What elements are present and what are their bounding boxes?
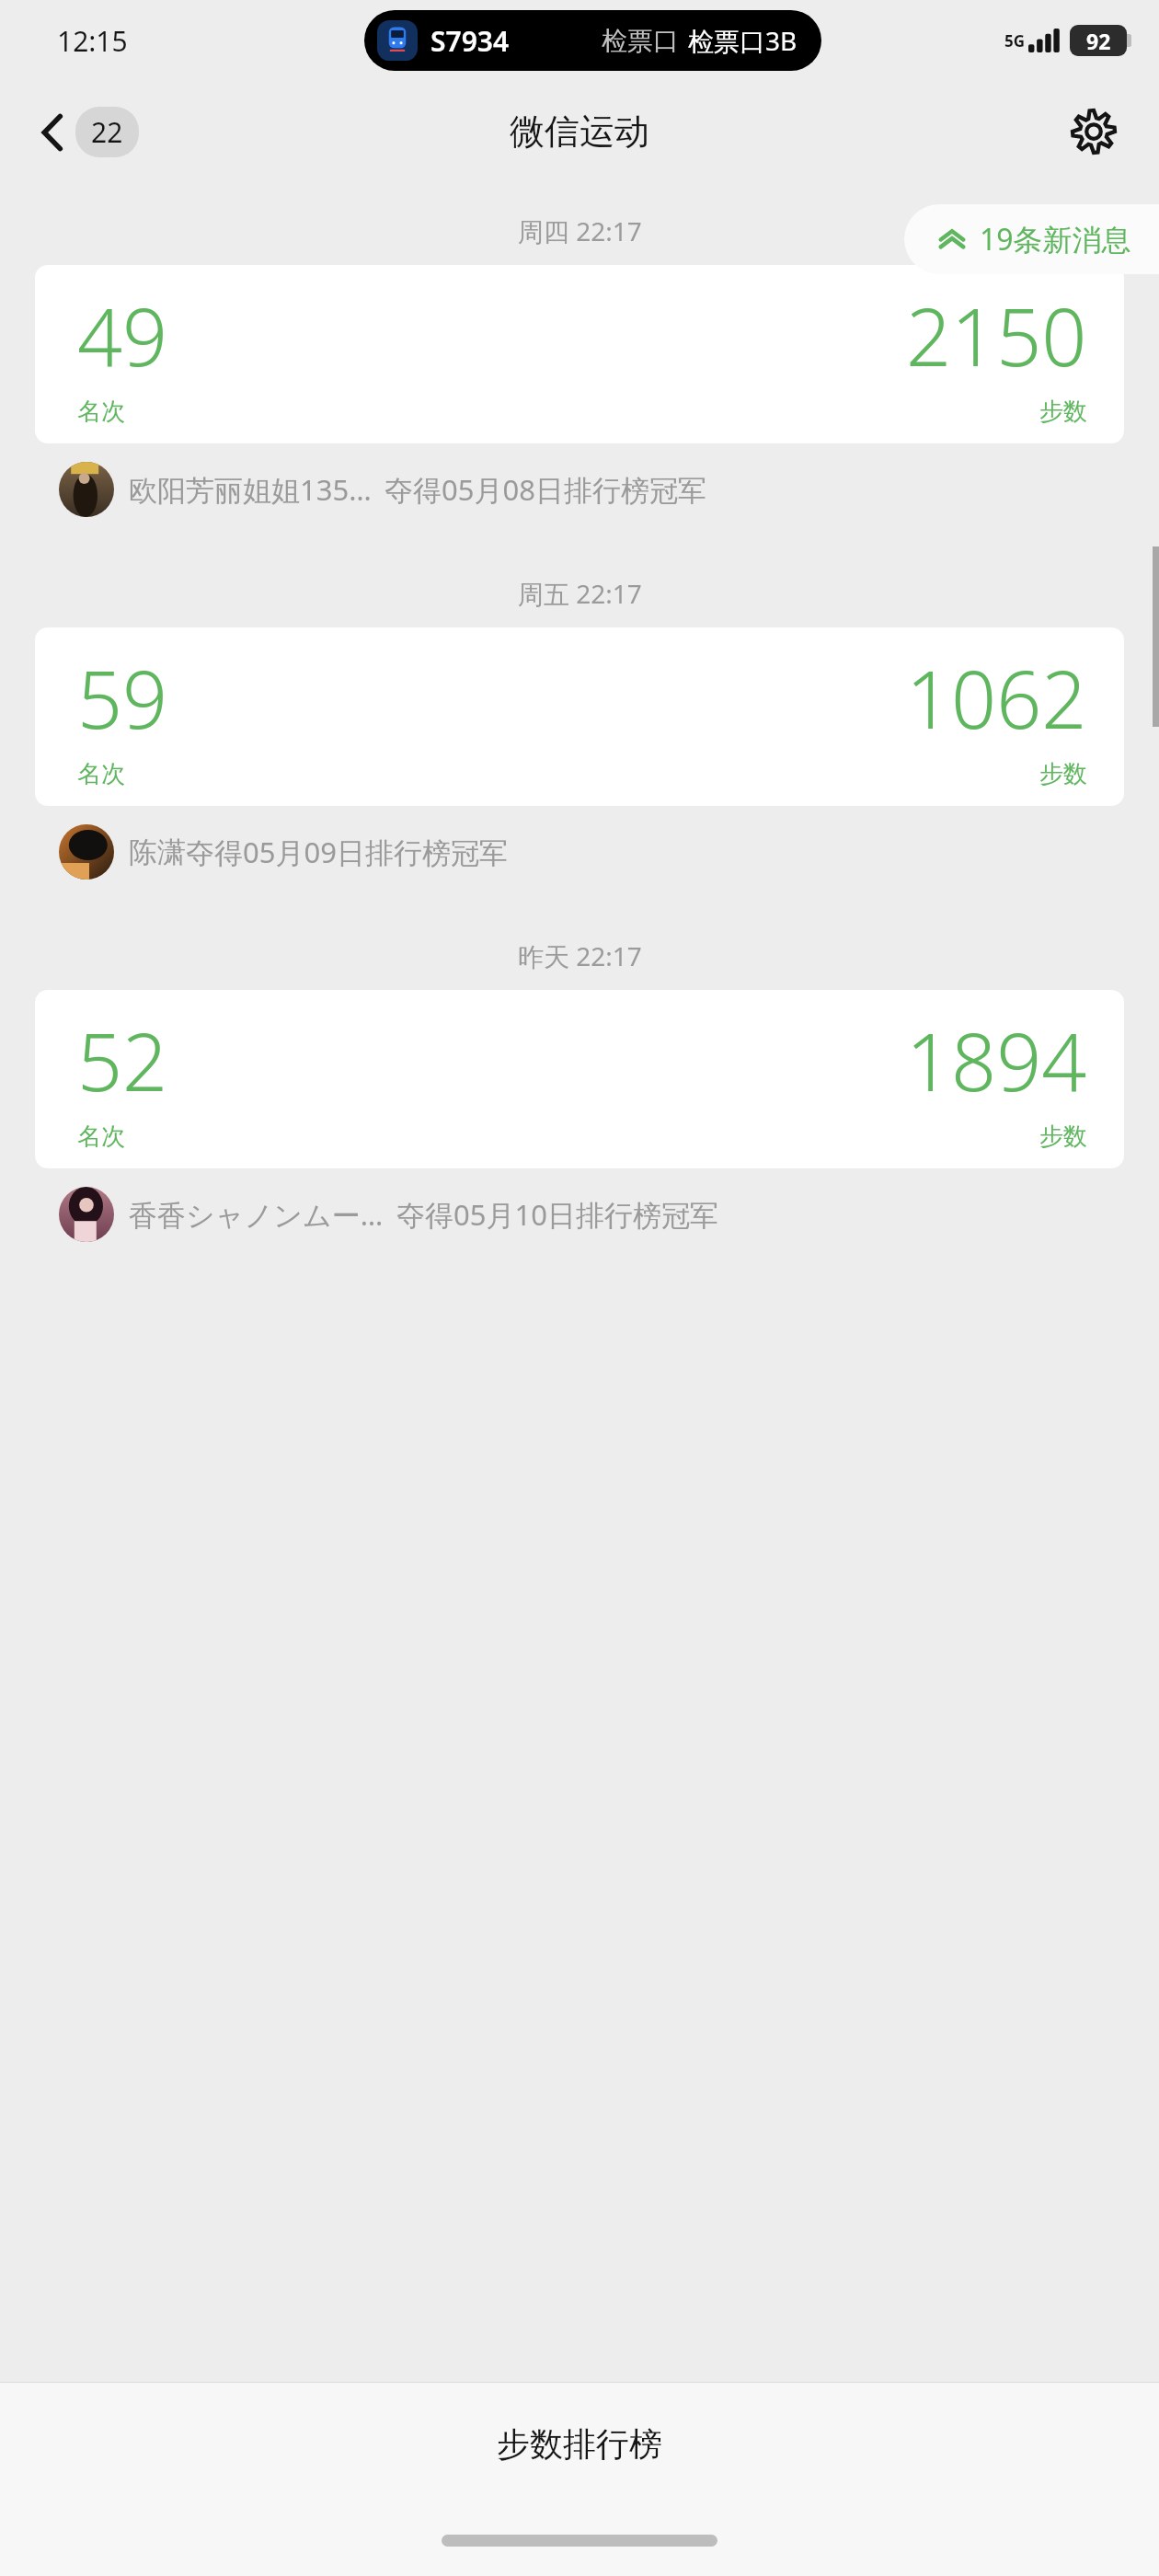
staticText: 步数 <box>1039 1121 1087 1152</box>
staticText: 1062 <box>906 644 1087 752</box>
staticText: 步数 <box>1039 397 1087 427</box>
button[interactable]: 59 <box>35 627 1124 806</box>
staticText: 名次 <box>77 759 125 789</box>
staticText: 名次 <box>77 1121 125 1152</box>
button[interactable]: 49 <box>35 265 1124 443</box>
staticText: 夺得05月09日排行榜冠军 <box>186 833 508 871</box>
staticText: 52 <box>77 1006 168 1114</box>
button[interactable]: 欧阳芳丽姐姐135… <box>35 454 1124 524</box>
staticText: 12:15 <box>57 22 128 60</box>
staticText: 检票口3B <box>688 23 798 58</box>
staticText: 2150 <box>906 282 1087 389</box>
staticText: 92 <box>1086 27 1111 55</box>
button[interactable]: 步数排行榜 <box>0 2383 1159 2504</box>
staticText: 微信运动 <box>510 109 649 154</box>
button[interactable]: 香香シャノンムー… <box>35 1179 1124 1249</box>
staticText: 步数排行榜 <box>497 2423 662 2465</box>
staticText: 香香シャノンムー… <box>129 1195 384 1234</box>
staticText: S7934 <box>430 22 510 60</box>
staticText: 49 <box>77 282 168 389</box>
staticText: 夺得05月08日排行榜冠军 <box>384 470 706 509</box>
staticText: 5G <box>1004 30 1026 52</box>
staticText: 陈潇 <box>129 834 186 870</box>
button[interactable]: 52 <box>35 990 1124 1168</box>
staticText: 1894 <box>906 1006 1087 1114</box>
staticText: 夺得05月10日排行榜冠军 <box>396 1195 718 1234</box>
staticText: 22 <box>91 113 123 151</box>
staticText: 欧阳芳丽姐姐135… <box>129 470 372 509</box>
staticText: 19条新消息 <box>980 219 1131 259</box>
button[interactable]: Settings <box>1063 101 1124 162</box>
button[interactable]: 陈潇 <box>35 817 1124 887</box>
staticText: 检票口 <box>602 25 679 57</box>
staticText: 名次 <box>77 397 125 427</box>
staticText: 昨天 22:17 <box>518 938 642 973</box>
button[interactable]: 19条新消息 <box>904 204 1159 274</box>
staticText: 周四 22:17 <box>518 213 642 248</box>
staticText: 周五 22:17 <box>518 576 642 611</box>
staticText: 59 <box>77 644 168 752</box>
staticText: 步数 <box>1039 759 1087 789</box>
button[interactable]: Back, 22 unread <box>31 101 150 163</box>
